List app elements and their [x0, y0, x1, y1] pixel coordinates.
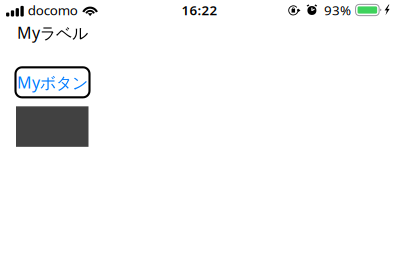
staticText: docomo [28, 1, 78, 19]
staticText: 93% [324, 1, 351, 19]
staticText: Myラベル [17, 22, 88, 43]
button[interactable]: Myボタン [15, 67, 89, 97]
staticText: Myボタン [17, 72, 88, 93]
staticText: 16:22 [181, 1, 217, 19]
